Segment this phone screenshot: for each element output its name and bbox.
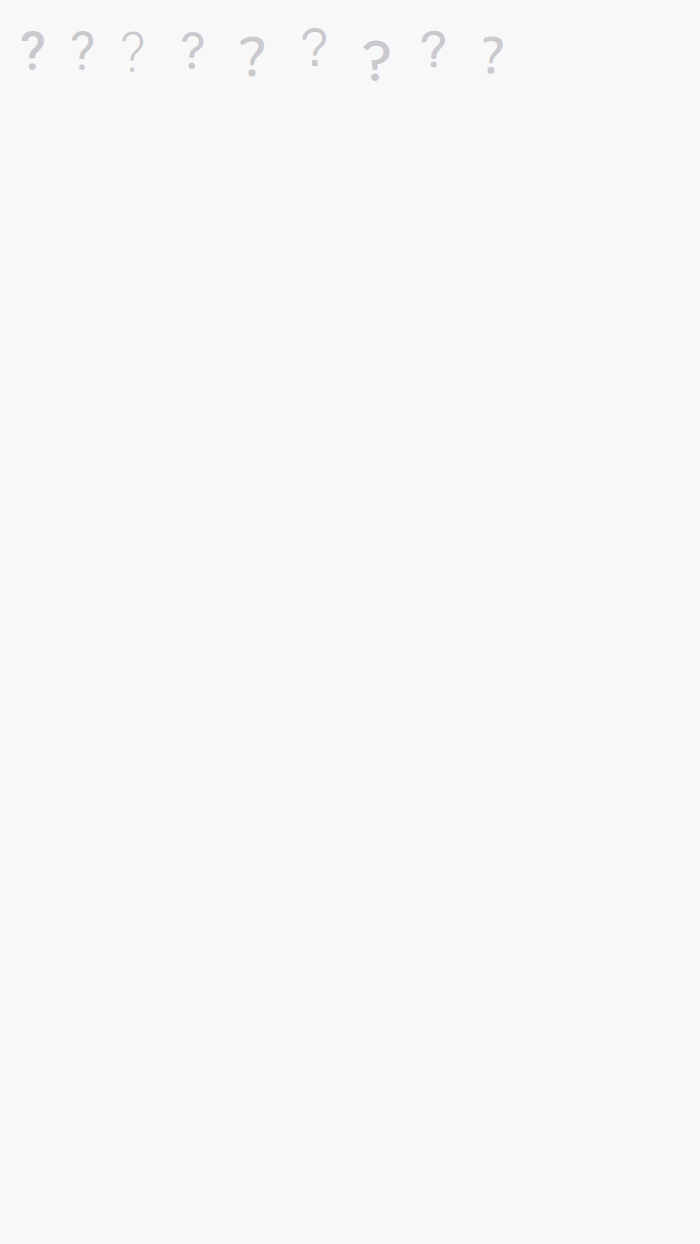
staticText: ? [300, 20, 329, 78]
staticText: ? [420, 20, 447, 80]
staticText: ? [480, 20, 504, 87]
staticText: ? [360, 20, 393, 101]
staticText: ? [20, 20, 46, 82]
staticText: ? [240, 20, 265, 96]
staticText: ? [70, 20, 95, 82]
staticText: ? [180, 20, 206, 81]
staticText: ? [120, 20, 145, 86]
